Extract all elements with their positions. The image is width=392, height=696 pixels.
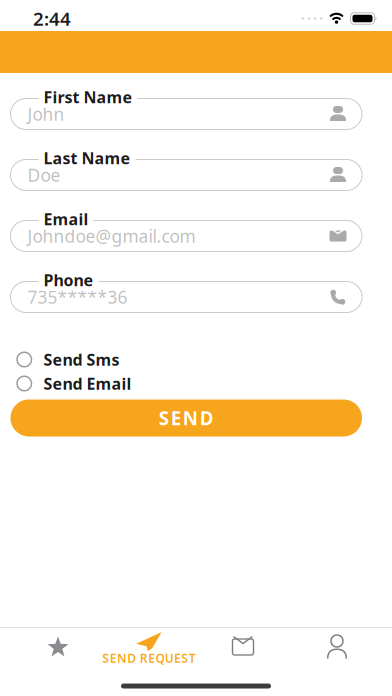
- button[interactable]: Send Sms: [10, 351, 362, 367]
- button[interactable]: Messages: [196, 628, 290, 666]
- staticText: Phone: [43, 269, 93, 291]
- button[interactable]: SEND REQUEST: [102, 628, 196, 666]
- staticText: Send Sms: [43, 349, 119, 370]
- staticText: 735*****36: [27, 285, 127, 308]
- staticText: John: [27, 102, 64, 125]
- button[interactable]: Favorites: [8, 628, 102, 666]
- button[interactable]: Send Email: [10, 375, 362, 391]
- button[interactable]: Profile: [290, 628, 384, 666]
- staticText: Doe: [27, 163, 60, 186]
- staticText: Send Email: [43, 373, 131, 394]
- staticText: SEND REQUEST: [102, 650, 196, 666]
- staticText: First Name: [43, 86, 132, 108]
- staticText: S E N D: [159, 406, 214, 430]
- staticText: Email: [43, 208, 88, 230]
- button[interactable]: S E N D: [10, 399, 362, 436]
- staticText: Johndoe@gmail.com: [27, 224, 195, 247]
- staticText: 2:44: [33, 6, 71, 31]
- staticText: Last Name: [43, 147, 130, 169]
